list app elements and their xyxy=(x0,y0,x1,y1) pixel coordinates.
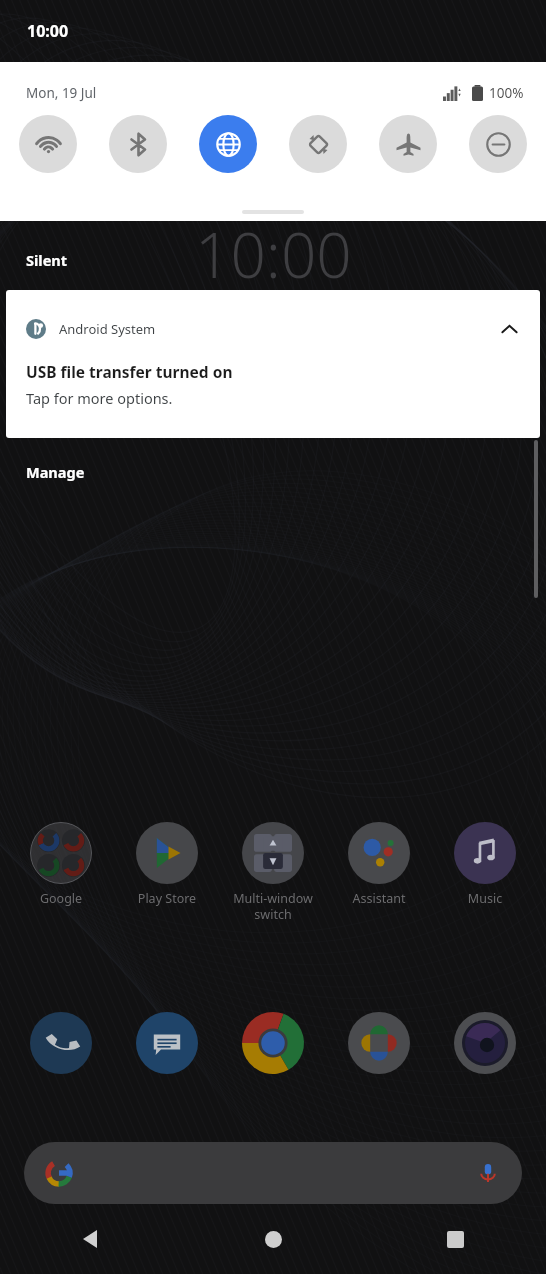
staticText: Silent xyxy=(26,250,68,270)
staticText: Android System xyxy=(59,320,156,338)
button[interactable]: Recents xyxy=(364,1204,546,1274)
button[interactable]: Phone xyxy=(11,1012,111,1074)
button[interactable]: Multi-window switch xyxy=(223,822,323,922)
staticText: Assistant xyxy=(329,890,429,907)
staticText: 10:00 xyxy=(195,212,352,296)
button[interactable]: Play Store xyxy=(117,822,217,907)
button[interactable]: Manage xyxy=(24,460,87,484)
staticText: Google xyxy=(11,890,111,907)
button[interactable]: Search xyxy=(24,1142,522,1204)
staticText: Tap for more options. xyxy=(26,388,173,408)
button[interactable]: Do not disturb xyxy=(469,115,527,173)
button[interactable]: Airplane mode xyxy=(379,115,437,173)
button[interactable]: Mobile data xyxy=(199,115,257,173)
staticText: Music xyxy=(435,890,535,907)
button[interactable]: Bluetooth xyxy=(109,115,167,173)
button[interactable]: Messages xyxy=(117,1012,217,1074)
button[interactable]: Google xyxy=(11,822,111,907)
button[interactable]: Chrome xyxy=(223,1012,323,1074)
button[interactable]: Photos xyxy=(329,1012,429,1074)
staticText: Mon, 19 Jul xyxy=(26,84,97,102)
button[interactable]: Assistant xyxy=(329,822,429,907)
button[interactable]: Auto-rotate xyxy=(289,115,347,173)
staticText: USB file transfer turned on xyxy=(26,361,233,382)
button[interactable]: Home xyxy=(182,1204,364,1274)
staticText: Multi-window switch xyxy=(223,890,323,922)
button[interactable]: Wi-Fi xyxy=(19,115,77,173)
button[interactable]: Collapse notification xyxy=(492,312,526,346)
staticText: Manage xyxy=(26,462,85,482)
staticText: Play Store xyxy=(117,890,217,907)
button[interactable]: Back xyxy=(0,1204,182,1274)
staticText: 100% xyxy=(489,84,524,102)
button[interactable]: Camera xyxy=(435,1012,535,1074)
button[interactable]: Music xyxy=(435,822,535,907)
button[interactable]: Android System xyxy=(6,290,540,438)
staticText: 10:00 xyxy=(27,20,69,42)
